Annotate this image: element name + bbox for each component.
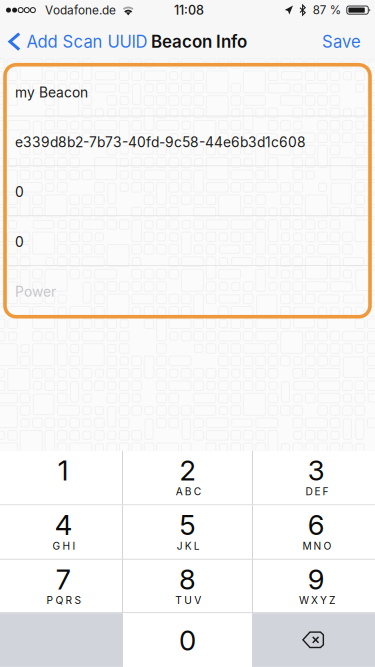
- staticText: 9: [308, 563, 325, 596]
- staticText: 3: [308, 454, 325, 487]
- staticText: 0: [15, 234, 24, 250]
- staticText: P Q R S: [46, 594, 81, 606]
- staticText: M N O: [302, 540, 331, 552]
- staticText: D E F: [305, 485, 328, 498]
- staticText: 0: [15, 184, 24, 200]
- button[interactable]: 9: [253, 560, 375, 612]
- button[interactable]: e339d8b2-7b73-40fd-9c58-44e6b3d1c608: [7, 116, 368, 165]
- staticText: G H I: [52, 540, 75, 552]
- button[interactable]: 8: [123, 560, 252, 612]
- staticText: J K L: [177, 540, 200, 552]
- button[interactable]: 7: [0, 560, 122, 612]
- button[interactable]: 0: [7, 166, 368, 215]
- staticText: Add Scan UUID: [26, 32, 147, 52]
- staticText: Save: [322, 32, 361, 52]
- staticText: Beacon Info: [151, 31, 247, 52]
- staticText: 11:08: [174, 2, 204, 18]
- staticText: 5: [179, 508, 195, 542]
- staticText: 4: [55, 508, 72, 542]
- button[interactable]: my Beacon: [7, 67, 368, 116]
- staticText: T U V: [175, 594, 201, 606]
- button[interactable]: 3: [253, 451, 375, 504]
- staticText: e339d8b2-7b73-40fd-9c58-44e6b3d1c608: [15, 134, 306, 151]
- staticText: my Beacon: [15, 84, 88, 101]
- staticText: 2: [179, 454, 195, 487]
- staticText: 87 %: [313, 3, 341, 17]
- button[interactable]: 6: [253, 505, 375, 559]
- staticText: 0: [179, 624, 196, 657]
- staticText: 8: [179, 563, 196, 596]
- button[interactable]: 4: [0, 505, 122, 559]
- button[interactable]: 2: [123, 451, 252, 504]
- staticText: Vodafone.de: [45, 3, 116, 17]
- staticText: 6: [308, 508, 325, 542]
- button[interactable]: Save: [291, 20, 375, 63]
- staticText: 1: [58, 454, 69, 487]
- button[interactable]: 0: [123, 613, 252, 667]
- button[interactable]: 0: [7, 216, 368, 265]
- button[interactable]: 1: [0, 451, 122, 504]
- button[interactable]: Power: [7, 266, 368, 315]
- staticText: A B C: [176, 485, 201, 498]
- button[interactable]: Delete: [253, 613, 375, 667]
- button[interactable]: Add Scan UUID: [0, 20, 153, 63]
- staticText: 7: [56, 563, 71, 596]
- button[interactable]: 5: [123, 505, 252, 559]
- staticText: Power: [15, 283, 56, 300]
- staticText: W X Y Z: [299, 594, 335, 606]
